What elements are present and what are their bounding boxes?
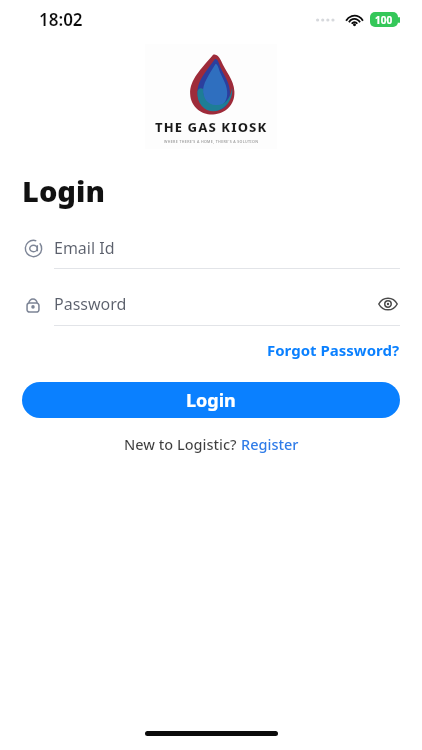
button[interactable]: Show password (376, 292, 400, 316)
staticText: THE GAS KIOSK (155, 118, 268, 136)
staticText: Register (241, 434, 299, 454)
staticText: 18:02 (39, 8, 83, 31)
staticText: Password (54, 293, 376, 315)
staticText: WHERE THERE'S A HOME, THERE'S A SOLUTION (164, 139, 259, 144)
button[interactable]: Login (22, 382, 400, 418)
staticText: Login (22, 171, 105, 210)
staticText: New to Logistic? (124, 434, 241, 454)
button[interactable]: Email Id (22, 237, 400, 269)
button[interactable]: Password (22, 292, 400, 326)
staticText: Login (186, 388, 236, 413)
staticText: Forgot Password? (267, 340, 400, 360)
button[interactable]: Forgot Password? (267, 338, 422, 362)
button[interactable]: Register (241, 434, 299, 454)
staticText: 100 (375, 13, 393, 27)
staticText: Email Id (54, 237, 400, 259)
